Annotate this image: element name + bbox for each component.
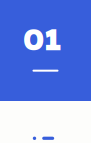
button[interactable]: Page 2, current page bbox=[42, 137, 54, 140]
staticText: 01 bbox=[23, 21, 62, 58]
button[interactable]: Page 1 bbox=[33, 137, 36, 140]
